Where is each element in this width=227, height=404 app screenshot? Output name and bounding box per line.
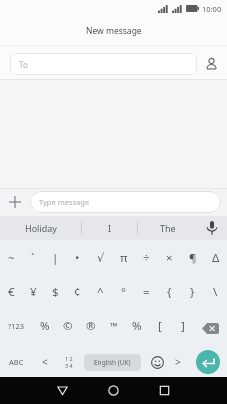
- staticText: `: [31, 250, 35, 266]
- staticText: 3 4: [65, 362, 73, 369]
- staticText: $: [52, 284, 59, 300]
- staticText: 1 2: [65, 355, 73, 362]
- staticText: {: [167, 284, 172, 300]
- staticText: <: [42, 355, 48, 369]
- staticText: \: [213, 284, 218, 300]
- staticText: •: [75, 250, 80, 266]
- button[interactable]: ™: [102, 309, 125, 343]
- staticText: =: [143, 284, 150, 300]
- staticText: ]: [181, 318, 185, 334]
- staticText: ©: [63, 318, 73, 334]
- staticText: }: [190, 284, 195, 300]
- staticText: ™: [110, 320, 118, 333]
- button[interactable]: =: [135, 275, 158, 309]
- staticText: Holiday: [25, 222, 57, 234]
- button[interactable]: I: [82, 216, 137, 240]
- staticText: Δ: [212, 250, 220, 266]
- button[interactable]: >: [166, 345, 189, 379]
- button[interactable]: %: [33, 309, 56, 343]
- staticText: ABC: [9, 357, 24, 367]
- button[interactable]: 1 2: [57, 345, 80, 379]
- button[interactable]: €: [0, 275, 22, 309]
- staticText: The: [160, 222, 176, 234]
- button[interactable]: $: [44, 275, 66, 309]
- staticText: ¢: [74, 284, 81, 300]
- button[interactable]: [: [148, 309, 171, 343]
- staticText: [: [158, 318, 162, 334]
- staticText: I: [108, 222, 112, 234]
- button[interactable]: [205, 57, 218, 70]
- button[interactable]: %: [125, 309, 148, 343]
- button[interactable]: [57, 385, 68, 396]
- button[interactable]: •: [66, 240, 89, 275]
- button[interactable]: °: [112, 275, 135, 309]
- button[interactable]: `: [22, 240, 44, 275]
- staticText: To: [19, 59, 28, 70]
- staticText: Type message: [39, 197, 90, 207]
- button[interactable]: ?123: [0, 309, 33, 343]
- button[interactable]: ABC: [0, 345, 32, 379]
- staticText: |: [52, 250, 59, 266]
- button[interactable]: <: [32, 345, 57, 379]
- button[interactable]: To: [10, 53, 197, 75]
- staticText: °: [121, 284, 126, 300]
- button[interactable]: ×: [158, 240, 181, 275]
- button[interactable]: ^: [89, 275, 112, 309]
- button[interactable]: English (UK): [84, 354, 141, 371]
- staticText: %: [132, 318, 142, 334]
- button[interactable]: ¶: [181, 240, 204, 275]
- button[interactable]: |: [44, 240, 66, 275]
- staticText: ÷: [143, 250, 150, 266]
- staticText: ^: [97, 284, 104, 300]
- staticText: 10:00: [202, 4, 222, 14]
- button[interactable]: [194, 309, 227, 343]
- staticText: π: [120, 250, 128, 266]
- button[interactable]: [145, 345, 166, 379]
- staticText: English (UK): [94, 358, 131, 367]
- button[interactable]: ~: [0, 240, 22, 275]
- button[interactable]: [108, 385, 119, 396]
- button[interactable]: ]: [171, 309, 194, 343]
- button[interactable]: {: [158, 275, 181, 309]
- button[interactable]: \: [204, 275, 227, 309]
- button[interactable]: π: [112, 240, 135, 275]
- staticText: √: [97, 251, 105, 264]
- button[interactable]: [189, 345, 227, 379]
- staticText: ¶: [189, 250, 197, 266]
- staticText: New message: [86, 25, 142, 37]
- button[interactable]: ®: [79, 309, 102, 343]
- button[interactable]: Holiday: [0, 216, 81, 240]
- button[interactable]: [159, 385, 170, 396]
- staticText: ?123: [8, 321, 25, 331]
- button[interactable]: Type message: [30, 191, 221, 213]
- staticText: %: [40, 318, 50, 334]
- button[interactable]: Δ: [204, 240, 227, 275]
- button[interactable]: ©: [56, 309, 79, 343]
- button[interactable]: ¢: [66, 275, 89, 309]
- button[interactable]: ¥: [22, 275, 44, 309]
- button[interactable]: The: [138, 216, 197, 240]
- button[interactable]: ÷: [135, 240, 158, 275]
- staticText: ×: [166, 250, 173, 266]
- staticText: ~: [8, 250, 15, 266]
- staticText: ¥: [30, 284, 37, 300]
- staticText: >: [175, 355, 181, 369]
- button[interactable]: [9, 196, 21, 208]
- button[interactable]: }: [181, 275, 204, 309]
- button[interactable]: [196, 350, 220, 374]
- staticText: ®: [86, 318, 96, 334]
- button[interactable]: [197, 216, 227, 240]
- button[interactable]: √: [89, 240, 112, 275]
- staticText: €: [8, 284, 15, 300]
